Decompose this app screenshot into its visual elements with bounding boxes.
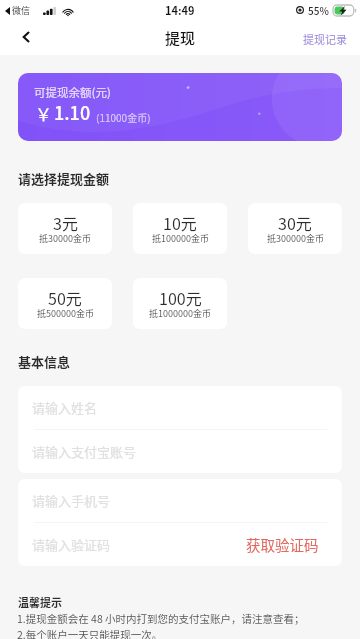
staticText: 2.每个账户一天只能提现一次。 <box>17 627 163 639</box>
button[interactable]: 100元 <box>133 278 227 329</box>
button[interactable]: 请输入手机号 <box>32 479 326 522</box>
staticText: 抵100000金币 <box>152 232 209 245</box>
staticText: 30元 <box>278 211 312 234</box>
staticText: 10元 <box>163 211 197 234</box>
button[interactable]: 请输入支付宝账号 <box>32 430 326 473</box>
staticText: 抵30000金币 <box>39 232 91 245</box>
staticText: 可提现余额(元) <box>34 84 111 101</box>
staticText: 1.提现金额会在 48 小时内打到您的支付宝账户，请注意查看； <box>17 611 305 626</box>
button[interactable]: Back <box>9 20 43 54</box>
button[interactable]: 50元 <box>18 278 112 329</box>
button[interactable]: 3元 <box>18 203 112 254</box>
staticText: 抵1000000金币 <box>149 307 211 320</box>
staticText: 55% <box>308 3 329 17</box>
staticText: ￥ <box>35 101 52 126</box>
button[interactable]: 10元 <box>133 203 227 254</box>
staticText: 提现 <box>165 27 196 49</box>
button[interactable]: 30元 <box>248 203 342 254</box>
staticText: 请选择提现金额 <box>18 169 110 188</box>
button[interactable]: 获取验证码 <box>239 529 326 560</box>
staticText: 请输入手机号 <box>32 491 111 510</box>
button[interactable]: 提现记录 <box>293 27 360 53</box>
staticText: 提现记录 <box>303 31 347 47</box>
staticText: 抵500000金币 <box>37 307 94 320</box>
staticText: 请输入验证码 <box>32 535 111 554</box>
staticText: 请输入姓名 <box>32 398 98 417</box>
staticText: 3元 <box>53 211 78 234</box>
staticText: 温馨提示 <box>18 594 62 610</box>
button[interactable]: 请输入验证码 <box>32 523 326 566</box>
staticText: (11000金币) <box>96 110 151 124</box>
button[interactable]: 请输入姓名 <box>32 386 326 429</box>
staticText: 100元 <box>159 286 202 309</box>
staticText: 获取验证码 <box>246 534 319 555</box>
staticText: 微信 <box>12 4 31 17</box>
staticText: 14:49 <box>165 2 195 18</box>
staticText: 50元 <box>48 286 82 309</box>
staticText: 基本信息 <box>18 352 71 371</box>
staticText: 抵300000金币 <box>267 232 324 245</box>
staticText: 1.10 <box>54 99 91 125</box>
staticText: 请输入支付宝账号 <box>32 442 137 461</box>
